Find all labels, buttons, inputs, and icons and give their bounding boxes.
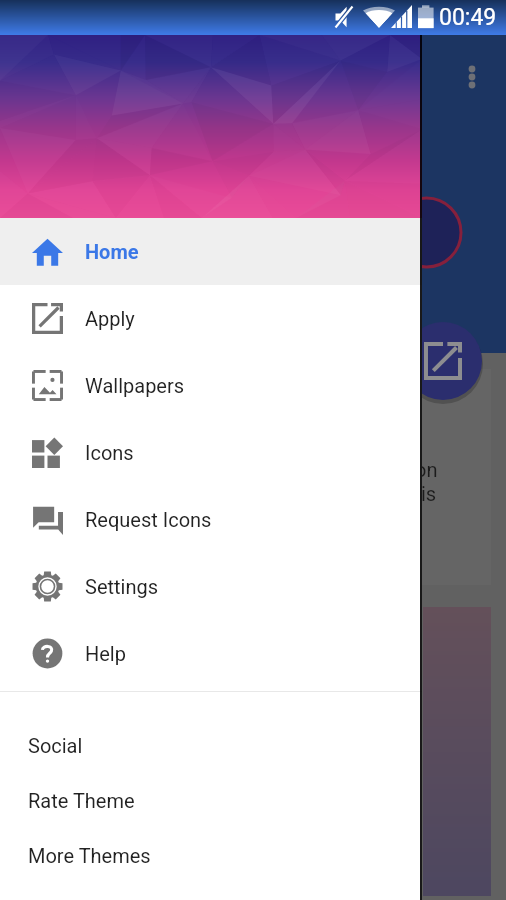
button[interactable]: Icons	[0, 419, 422, 486]
staticText: Social	[28, 734, 83, 757]
button[interactable]: Home	[0, 218, 422, 285]
staticText: More Themes	[28, 844, 151, 867]
button[interactable]: Rate Theme	[0, 773, 422, 828]
button[interactable]: More Themes	[0, 828, 422, 883]
staticText: Request Icons	[85, 508, 212, 531]
button[interactable]: Help	[0, 620, 422, 687]
staticText: is	[421, 482, 437, 505]
staticText: Rate Theme	[28, 789, 135, 812]
button[interactable]: Wallpapers	[0, 352, 422, 419]
staticText: Help	[85, 642, 126, 665]
button[interactable]: Request Icons	[0, 486, 422, 553]
staticText: 00:49	[439, 4, 497, 31]
button[interactable]: Apply	[0, 285, 422, 352]
button[interactable]: Social	[0, 718, 422, 773]
button[interactable]: More options	[460, 58, 496, 94]
staticText: Home	[85, 240, 139, 263]
staticText: on	[415, 458, 438, 481]
button[interactable]: Apply icon pack	[404, 322, 482, 400]
button[interactable]: Settings	[0, 553, 422, 620]
staticText: Settings	[85, 575, 159, 598]
staticText: Icons	[85, 441, 134, 464]
staticText: Apply	[85, 307, 135, 330]
staticText: Wallpapers	[85, 374, 185, 397]
